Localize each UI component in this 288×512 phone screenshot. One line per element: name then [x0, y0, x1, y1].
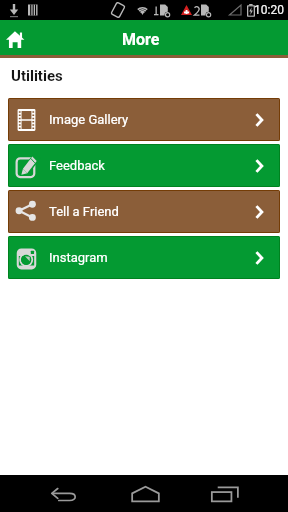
- staticText: Instagram: [49, 250, 108, 265]
- staticText: More: [122, 30, 160, 49]
- staticText: Tell a Friend: [49, 204, 119, 219]
- staticText: Feedback: [49, 158, 105, 173]
- button[interactable]: Image Gallery: [8, 98, 280, 141]
- staticText: Utilities: [11, 67, 63, 85]
- button[interactable]: Tell a Friend: [8, 190, 280, 233]
- button[interactable]: Recents: [197, 475, 253, 512]
- button[interactable]: Home: [117, 475, 173, 512]
- button[interactable]: Home: [0, 24, 31, 55]
- button[interactable]: Back: [36, 475, 92, 512]
- staticText: 10:20: [254, 3, 284, 17]
- button[interactable]: Feedback: [8, 144, 280, 187]
- staticText: Image Gallery: [49, 112, 129, 127]
- button[interactable]: Instagram: [8, 236, 280, 279]
